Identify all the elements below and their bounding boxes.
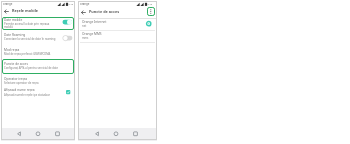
- staticText: Rețele mobile: [12, 8, 39, 13]
- staticText: Orange Internet: [82, 20, 107, 24]
- button[interactable]: [1, 47, 75, 58]
- staticText: Afișează nume rețea: [4, 88, 35, 92]
- button[interactable]: [1, 32, 75, 44]
- staticText: Date mobile: [4, 18, 23, 22]
- staticText: Configurați APN-ul pentru serviciul de d…: [4, 66, 58, 70]
- button[interactable]: [1, 87, 75, 99]
- button[interactable]: [147, 7, 155, 16]
- staticText: orange: [3, 2, 13, 6]
- button[interactable]: [146, 21, 152, 27]
- button[interactable]: [78, 128, 157, 141]
- staticText: Mod de rețea preferat: GSM/WCDMA: [4, 52, 51, 56]
- button[interactable]: [2, 59, 74, 74]
- staticText: Operatori rețea: [4, 77, 28, 81]
- staticText: Puncte de acces: [4, 62, 28, 66]
- staticText: Puncte de acces: [89, 9, 120, 14]
- staticText: Conectare la serviciul de date în roamin…: [4, 37, 56, 41]
- button[interactable]: [1, 76, 75, 87]
- staticText: 14:16: [67, 2, 74, 5]
- staticText: Afișează numele rețelei pe statusbar: [4, 93, 50, 97]
- staticText: mms: [82, 36, 89, 40]
- staticText: Date Roaming: [4, 33, 26, 37]
- staticText: 14:16: [146, 2, 153, 5]
- staticText: mobilă: [4, 25, 13, 29]
- button[interactable]: [1, 7, 75, 17]
- button[interactable]: [2, 17, 74, 30]
- staticText: Mod rețea: [4, 48, 20, 52]
- staticText: net: [82, 24, 87, 28]
- button[interactable]: [78, 7, 157, 18]
- button[interactable]: [1, 128, 75, 141]
- staticText: Orange MMS: [82, 32, 102, 36]
- staticText: Permite accesul la date prin rețeaua: [4, 22, 50, 26]
- button[interactable]: [62, 35, 73, 41]
- button[interactable]: [66, 90, 71, 95]
- button[interactable]: [78, 19, 157, 30]
- staticText: orange: [80, 2, 90, 6]
- button[interactable]: [78, 31, 157, 42]
- button[interactable]: [62, 19, 73, 25]
- staticText: Selectare operator de rețea: [4, 81, 39, 85]
